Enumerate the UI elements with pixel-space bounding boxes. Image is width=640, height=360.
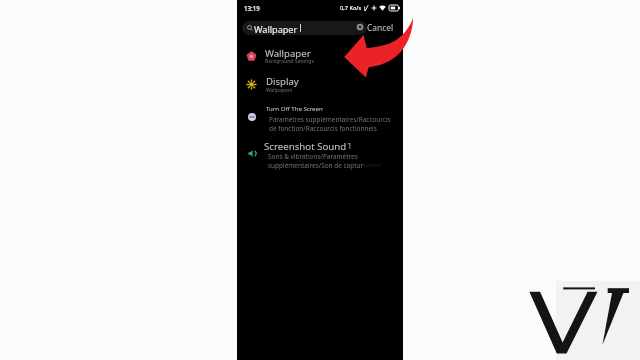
staticText: Sons & vibrations/Paramètres supplémenta…	[268, 152, 364, 170]
button[interactable]	[237, 70, 403, 91]
staticText: Turn Off The Screen	[266, 104, 323, 112]
button[interactable]	[237, 135, 403, 165]
button[interactable]	[237, 99, 403, 129]
button[interactable]: Cancel	[367, 22, 394, 33]
staticText: Cancel	[367, 22, 394, 33]
button[interactable]: Clear search text	[356, 23, 364, 31]
staticText: Wallpapers	[266, 87, 293, 94]
staticText: Wallpaper	[265, 47, 311, 60]
staticText: 0,7 Ko/s	[340, 4, 362, 12]
button[interactable]	[237, 42, 403, 63]
other: Search	[247, 25, 253, 31]
button[interactable]: Search	[242, 21, 367, 35]
staticText: Display	[266, 75, 299, 88]
staticText: Paramètres supplémentaires/Raccourcis de…	[269, 115, 391, 133]
staticText: tutoriel	[363, 161, 381, 168]
staticText: Background Settings	[265, 58, 314, 65]
staticText: Wallpaper	[254, 23, 298, 35]
staticText: 13:19	[244, 4, 260, 12]
staticText: Screenshot Sound	[264, 140, 347, 153]
